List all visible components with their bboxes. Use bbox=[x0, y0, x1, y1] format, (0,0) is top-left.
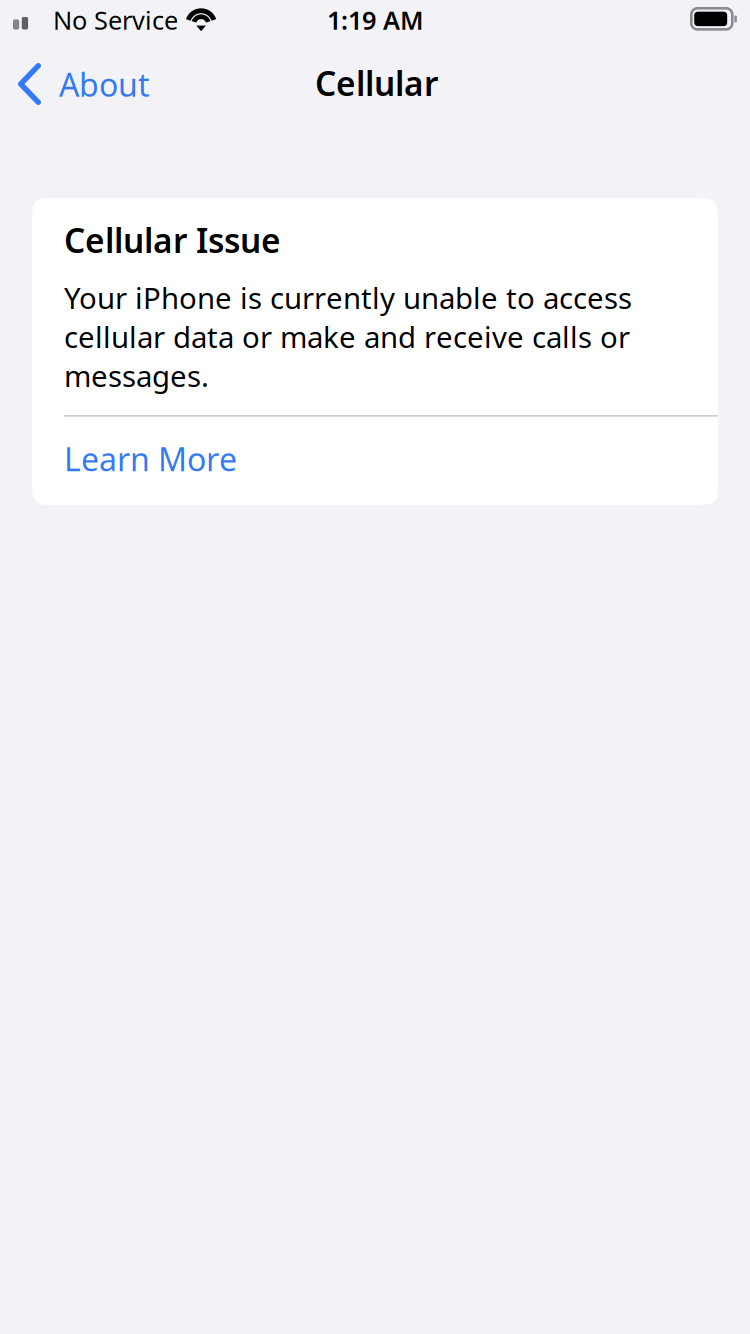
staticText: No Service bbox=[53, 3, 178, 37]
staticText: Learn More bbox=[64, 438, 237, 480]
button[interactable]: Learn More bbox=[32, 417, 718, 505]
staticText: Your iPhone is currently unable to acces… bbox=[64, 278, 632, 395]
staticText: Cellular Issue bbox=[64, 218, 281, 262]
staticText: About bbox=[59, 63, 150, 105]
staticText: Cellular bbox=[315, 61, 438, 105]
button[interactable]: Back to About bbox=[10, 52, 162, 106]
staticText: 1:19 AM bbox=[327, 3, 424, 37]
